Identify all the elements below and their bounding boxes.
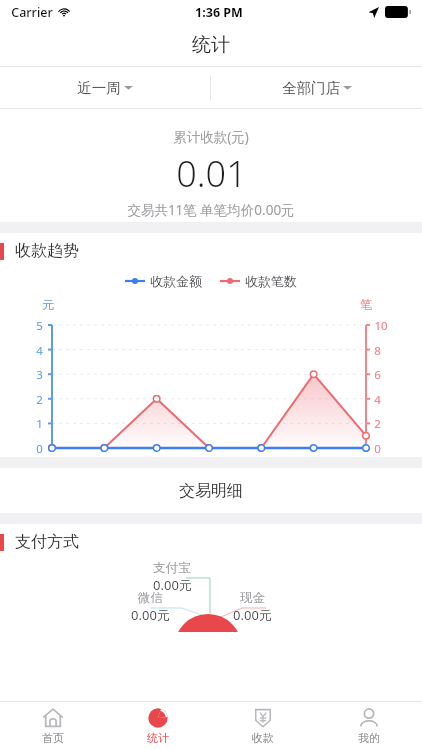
staticText: Carrier: [11, 4, 53, 21]
staticText: 4: [374, 392, 381, 408]
staticText: 05-28: [348, 455, 384, 471]
staticText: 我的: [358, 731, 380, 745]
staticText: 收款: [252, 731, 274, 745]
staticText: 05-24: [139, 455, 175, 471]
staticText: 笔: [360, 297, 372, 312]
staticText: 交易共11笔 单笔均价0.00元: [127, 201, 295, 219]
staticText: 统计: [192, 33, 230, 57]
button[interactable]: 近一周: [0, 67, 210, 108]
staticText: 05-26: [243, 455, 279, 471]
staticText: 收款趋势: [15, 241, 79, 261]
button[interactable]: 首页: [0, 702, 105, 750]
staticText: 元: [42, 297, 54, 312]
staticText: 全部门店: [282, 79, 340, 97]
staticText: 0.00元: [131, 606, 170, 624]
staticText: 05-23: [86, 455, 122, 471]
staticText: 现金: [240, 590, 265, 606]
staticText: 10: [374, 318, 388, 334]
staticText: 05-22: [34, 455, 70, 471]
staticText: 0.00元: [153, 576, 192, 594]
staticText: 6: [374, 367, 381, 383]
staticText: 近一周: [77, 79, 121, 97]
staticText: 支付宝: [153, 560, 191, 576]
staticText: 1: [36, 416, 43, 432]
button[interactable]: 全部门店: [211, 67, 422, 108]
staticText: 支付方式: [15, 532, 79, 552]
staticText: 收款笔数: [245, 273, 297, 289]
staticText: 05-25: [191, 455, 227, 471]
staticText: 3: [36, 367, 43, 383]
staticText: 累计收款(元): [173, 128, 249, 146]
staticText: 05-27: [296, 455, 332, 471]
staticText: 微信: [138, 590, 163, 606]
staticText: 8: [374, 343, 381, 359]
staticText: 首页: [42, 731, 64, 745]
staticText: 2: [374, 416, 381, 432]
staticText: 0: [36, 441, 43, 457]
button[interactable]: 交易明细: [0, 468, 422, 513]
staticText: 0: [374, 441, 381, 457]
button[interactable]: 我的: [316, 702, 422, 750]
staticText: 0.01: [176, 149, 247, 198]
staticText: 2: [36, 392, 43, 408]
staticText: 交易明细: [179, 481, 243, 501]
staticText: 5: [36, 318, 43, 334]
staticText: 收款金额: [150, 273, 202, 289]
staticText: 1:36 PM: [195, 4, 243, 21]
staticText: 4: [36, 343, 43, 359]
button[interactable]: 收款: [210, 702, 316, 750]
button[interactable]: 统计: [105, 702, 210, 750]
staticText: 0.00元: [233, 606, 272, 624]
staticText: 统计: [147, 731, 169, 745]
